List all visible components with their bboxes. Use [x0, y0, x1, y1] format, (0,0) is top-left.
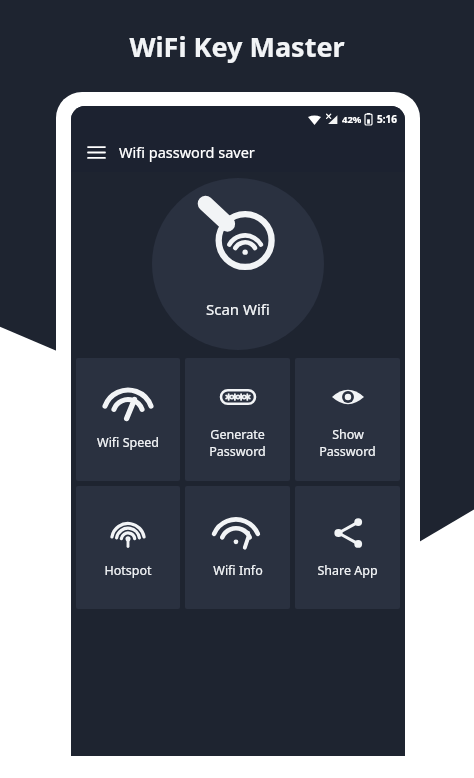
staticText: 5:16: [377, 112, 397, 126]
staticText: Scan Wifi: [206, 299, 270, 319]
button[interactable]: Wifi Info: [185, 486, 290, 609]
staticText: Wifi password saver: [119, 142, 255, 162]
staticText: Wifi Info: [213, 562, 263, 579]
button[interactable]: Generate: [185, 358, 290, 481]
staticText: Generate: [210, 426, 265, 443]
button[interactable]: Share App: [295, 486, 400, 609]
staticText: Password: [209, 443, 266, 460]
button[interactable]: Wifi Speed: [76, 358, 180, 481]
staticText: Password: [319, 443, 376, 460]
staticText: WiFi Key Master: [129, 28, 345, 65]
button[interactable]: Hotspot: [76, 486, 180, 609]
staticText: 42%: [342, 113, 362, 126]
staticText: Show: [332, 426, 364, 443]
button[interactable]: Show: [295, 358, 400, 481]
button[interactable]: Open navigation menu: [81, 137, 111, 167]
staticText: Share App: [317, 562, 378, 579]
button[interactable]: Scan Wifi: [152, 178, 324, 350]
staticText: Wifi Speed: [97, 434, 159, 451]
staticText: Hotspot: [104, 562, 152, 579]
